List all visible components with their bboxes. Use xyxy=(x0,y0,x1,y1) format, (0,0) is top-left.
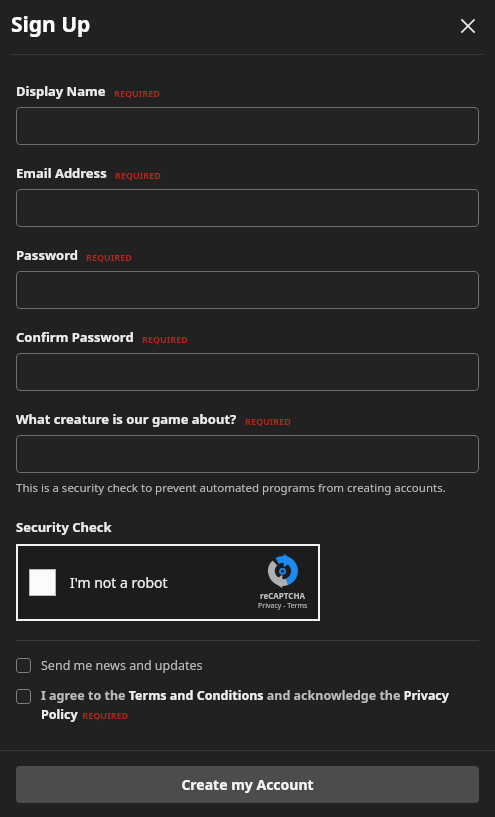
staticText: REQUIRED xyxy=(245,415,291,427)
staticText: REQUIRED xyxy=(86,251,132,263)
staticText: I'm not a robot xyxy=(70,573,168,592)
button[interactable]: I'm not a robot xyxy=(16,544,320,621)
staticText: Password xyxy=(16,246,78,264)
button[interactable] xyxy=(16,107,479,145)
staticText: REQUIRED xyxy=(115,169,161,181)
staticText: reCAPTCHA xyxy=(260,590,306,601)
staticText: Email Address xyxy=(16,164,107,182)
staticText: Display Name xyxy=(16,82,106,100)
staticText: Send me news and updates xyxy=(41,657,203,674)
staticText: This is a security check to prevent auto… xyxy=(16,480,446,496)
staticText: Security Check xyxy=(16,518,112,536)
staticText: REQUIRED xyxy=(114,87,160,99)
button[interactable] xyxy=(16,271,479,309)
staticText: Create my Account xyxy=(181,775,314,794)
staticText: What creature is our game about? xyxy=(16,410,237,428)
button[interactable]: I agree to the Terms and Conditions and … xyxy=(16,687,479,723)
button[interactable] xyxy=(16,435,479,473)
staticText: I agree to the Terms and Conditions and … xyxy=(41,687,479,723)
staticText: REQUIRED xyxy=(142,333,188,345)
button[interactable] xyxy=(16,189,479,227)
button[interactable]: Send me news and updates xyxy=(16,657,479,674)
staticText: Privacy - Terms xyxy=(258,601,308,611)
staticText: Sign Up xyxy=(11,10,91,39)
button[interactable]: Create my Account xyxy=(16,766,479,803)
button[interactable]: Close xyxy=(451,9,485,43)
staticText: Confirm Password xyxy=(16,328,134,346)
button[interactable] xyxy=(16,353,479,391)
